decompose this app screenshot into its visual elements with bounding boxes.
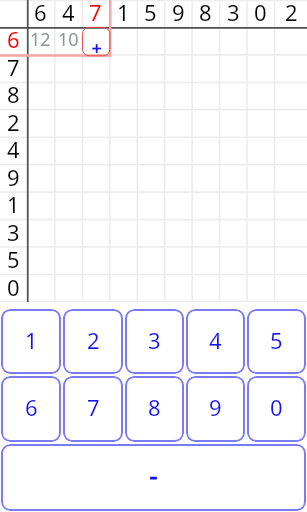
button[interactable]: Row 5 [0, 247, 27, 274]
button[interactable]: Column 8 [192, 0, 219, 27]
button[interactable]: 1 times 3 [220, 192, 247, 219]
button[interactable]: 5 times 7 [82, 247, 109, 274]
button[interactable]: 3 times 0 [247, 220, 274, 247]
button[interactable]: 8 times 2 [275, 82, 307, 109]
button[interactable]: 1 [1, 309, 61, 374]
button[interactable]: Column 5 [137, 0, 164, 27]
button[interactable]: Column 9 [165, 0, 192, 27]
button[interactable]: 0 times 9 [165, 275, 192, 302]
button[interactable]: 1 times 8 [192, 192, 219, 219]
button[interactable]: Column 4 [55, 0, 82, 27]
button[interactable]: 8 times 7 [82, 82, 109, 109]
button[interactable]: 2 times 9 [165, 110, 192, 137]
button[interactable]: 7 times 3 [220, 55, 247, 82]
button[interactable]: Column 0 [247, 0, 274, 27]
button[interactable]: 8 times 5 [137, 82, 164, 109]
button[interactable]: 9 times 8 [192, 165, 219, 192]
button[interactable]: Column 1 [110, 0, 137, 27]
button[interactable]: Selected cell 6 times 7, enter answer [82, 27, 109, 54]
button[interactable]: Row 9 [0, 165, 27, 192]
button[interactable]: 3 [125, 309, 184, 374]
button[interactable]: 7 times 5 [137, 55, 164, 82]
button[interactable]: 9 times 4 [55, 165, 82, 192]
button[interactable]: 8 times 9 [165, 82, 192, 109]
button[interactable]: 6 times 9 [165, 27, 192, 54]
button[interactable]: 5 times 3 [220, 247, 247, 274]
button[interactable]: 7 times 0 [247, 55, 274, 82]
button[interactable]: 5 times 0 [247, 247, 274, 274]
button[interactable]: 0 times 8 [192, 275, 219, 302]
button[interactable]: 0 times 6 [27, 275, 54, 302]
button[interactable]: 6 times 4 equals 10 [55, 27, 82, 54]
button[interactable]: 3 times 2 [275, 220, 307, 247]
button[interactable]: 8 [125, 376, 184, 442]
button[interactable]: 2 times 0 [247, 110, 274, 137]
button[interactable]: 4 times 6 [27, 137, 54, 164]
button[interactable]: 1 times 6 [27, 192, 54, 219]
button[interactable]: 6 times 8 [192, 27, 219, 54]
button[interactable]: 3 times 4 [55, 220, 82, 247]
button[interactable]: 1 times 7 [82, 192, 109, 219]
button[interactable]: 6 times 2 [275, 27, 307, 54]
button[interactable]: 0 times 0 [247, 275, 274, 302]
button[interactable]: 3 times 9 [165, 220, 192, 247]
button[interactable]: 0 times 5 [137, 275, 164, 302]
button[interactable]: 2 times 4 [55, 110, 82, 137]
button[interactable]: Row 8 [0, 82, 27, 109]
button[interactable]: 5 times 6 [27, 247, 54, 274]
button[interactable]: 2 times 5 [137, 110, 164, 137]
button[interactable]: Row 0 [0, 275, 27, 302]
button[interactable]: 0 [247, 376, 306, 442]
button[interactable]: 7 times 2 [275, 55, 307, 82]
button[interactable]: 9 times 2 [275, 165, 307, 192]
button[interactable]: 5 times 8 [192, 247, 219, 274]
button[interactable]: 5 times 9 [165, 247, 192, 274]
button[interactable]: 4 [186, 309, 245, 374]
button[interactable]: 4 times 9 [165, 137, 192, 164]
button[interactable]: 8 times 1 [110, 82, 137, 109]
button[interactable]: 4 times 2 [275, 137, 307, 164]
button[interactable]: 8 times 4 [55, 82, 82, 109]
button[interactable]: Row 4 [0, 137, 27, 164]
button[interactable]: 3 times 1 [110, 220, 137, 247]
button[interactable]: 8 times 6 [27, 82, 54, 109]
button[interactable]: 6 times 1 [110, 27, 137, 54]
button[interactable]: 6 times 3 [220, 27, 247, 54]
button[interactable]: 7 times 7 [82, 55, 109, 82]
button[interactable]: 3 times 8 [192, 220, 219, 247]
button[interactable]: 0 times 3 [220, 275, 247, 302]
button[interactable]: 9 times 0 [247, 165, 274, 192]
button[interactable]: Row 2 [0, 110, 27, 137]
button[interactable]: Row 6 [0, 27, 27, 54]
button[interactable]: 4 times 1 [110, 137, 137, 164]
button[interactable]: 3 times 5 [137, 220, 164, 247]
button[interactable]: Row 3 [0, 220, 27, 247]
button[interactable]: 2 times 7 [82, 110, 109, 137]
button[interactable]: 4 times 3 [220, 137, 247, 164]
button[interactable]: 2 times 1 [110, 110, 137, 137]
button[interactable]: Column 3 [220, 0, 247, 27]
button[interactable]: Row 1 [0, 192, 27, 219]
button[interactable]: 6 times 5 [137, 27, 164, 54]
button[interactable]: 7 [63, 376, 123, 442]
button[interactable]: 1 times 5 [137, 192, 164, 219]
button[interactable]: 3 times 6 [27, 220, 54, 247]
button[interactable]: 1 times 4 [55, 192, 82, 219]
button[interactable]: 0 times 7 [82, 275, 109, 302]
button[interactable]: 1 times 1 [110, 192, 137, 219]
button[interactable]: 4 times 4 [55, 137, 82, 164]
button[interactable]: 0 times 4 [55, 275, 82, 302]
button[interactable]: 1 times 9 [165, 192, 192, 219]
button[interactable]: 7 times 4 [55, 55, 82, 82]
button[interactable]: 9 times 7 [82, 165, 109, 192]
button[interactable]: Column 7 [82, 0, 109, 27]
button[interactable]: 0 times 1 [110, 275, 137, 302]
button[interactable]: 6 times 6 equals 12 [27, 27, 54, 54]
button[interactable]: Row 7 [0, 55, 27, 82]
button[interactable]: 9 times 3 [220, 165, 247, 192]
button[interactable]: 3 times 7 [82, 220, 109, 247]
button[interactable]: 5 times 1 [110, 247, 137, 274]
button[interactable]: 1 times 0 [247, 192, 274, 219]
button[interactable]: 9 times 9 [165, 165, 192, 192]
